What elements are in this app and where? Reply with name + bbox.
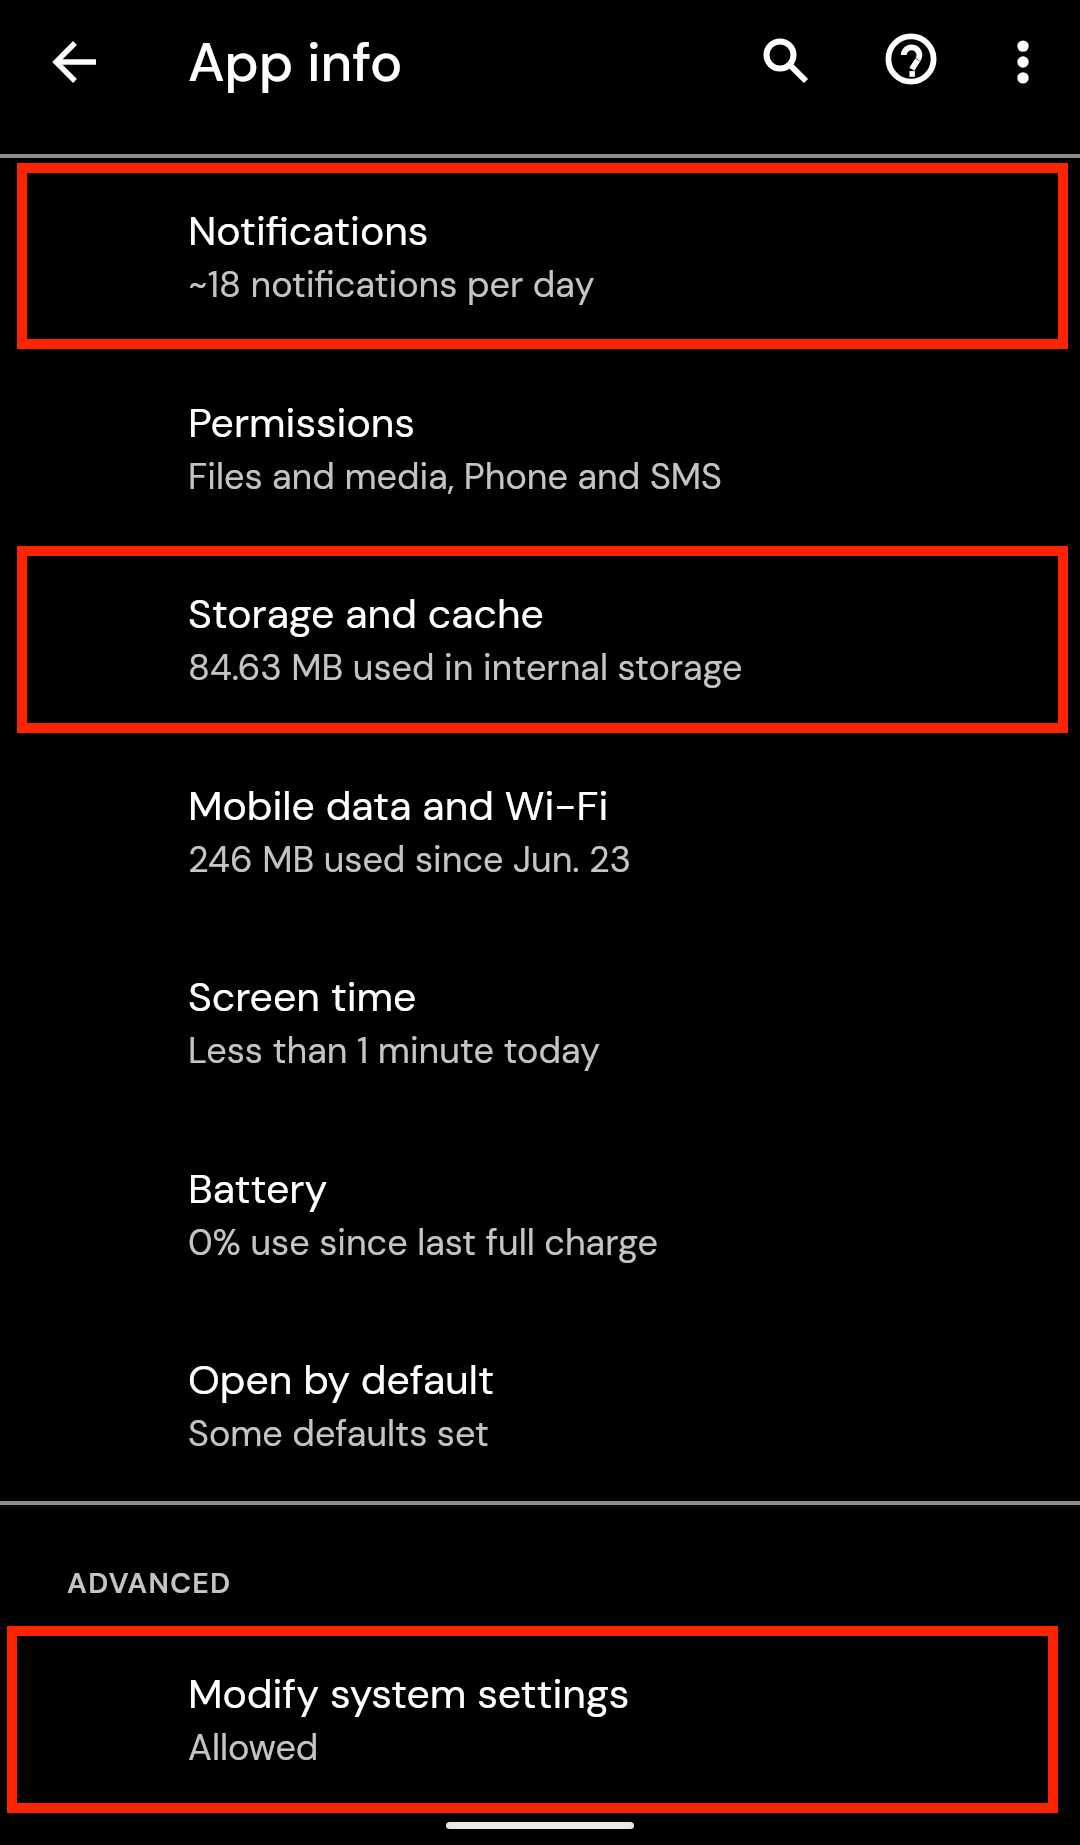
staticText: Some defaults set [188, 1410, 489, 1457]
staticText: Battery [188, 1162, 328, 1215]
button[interactable]: Mobile data and Wi-Fi [0, 738, 1080, 930]
staticText: Storage and cache [188, 587, 544, 640]
staticText: ~18 notifications per day [188, 261, 595, 308]
button[interactable]: Screen time [0, 929, 1080, 1121]
staticText: Files and media, Phone and SMS [188, 453, 722, 500]
button[interactable]: Help [865, 13, 957, 105]
button[interactable]: Permissions [0, 355, 1080, 547]
button[interactable]: More options [977, 16, 1069, 108]
staticText: Mobile data and Wi-Fi [188, 779, 609, 832]
staticText: Modify system settings [188, 1667, 630, 1720]
staticText: 246 MB used since Jun. 23 [188, 836, 632, 883]
button[interactable]: Modify system settings [0, 1626, 1080, 1805]
staticText: 84.63 MB used in internal storage [188, 644, 743, 691]
staticText: Open by default [188, 1353, 494, 1406]
staticText: Notifications [188, 204, 429, 257]
button[interactable]: Notifications [0, 163, 1080, 355]
staticText: Allowed [188, 1724, 319, 1771]
staticText: ADVANCED [67, 1565, 232, 1602]
button[interactable]: Battery [0, 1121, 1080, 1313]
staticText: Permissions [188, 396, 415, 449]
button[interactable]: Search [735, 16, 827, 108]
staticText: App info [188, 27, 403, 97]
button[interactable]: Open by default [0, 1312, 1080, 1504]
button[interactable]: Back [30, 16, 122, 108]
staticText: Screen time [188, 970, 417, 1023]
staticText: 0% use since last full charge [188, 1219, 658, 1266]
staticText: Less than 1 minute today [188, 1027, 601, 1074]
button[interactable]: Storage and cache [0, 546, 1080, 738]
